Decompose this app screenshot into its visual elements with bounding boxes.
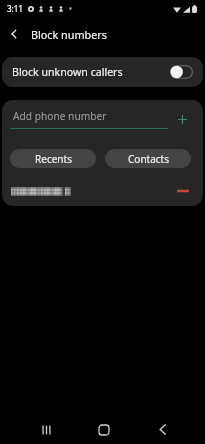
button[interactable]: Add number xyxy=(174,111,190,127)
other: Block unknown callers switch xyxy=(170,65,193,79)
button[interactable]: Recent apps xyxy=(28,415,64,444)
staticText: Block unknown callers xyxy=(12,65,123,79)
other: Remove number xyxy=(175,183,191,199)
staticText: Block numbers xyxy=(31,27,107,42)
staticText: Recents xyxy=(35,152,72,166)
button[interactable]: Home xyxy=(86,415,122,444)
button[interactable]: Remove number xyxy=(2,182,203,200)
button[interactable]: Recents xyxy=(10,149,96,168)
staticText: Add phone number xyxy=(13,109,107,123)
button[interactable]: Block unknown callers xyxy=(2,57,203,87)
button[interactable]: Back xyxy=(0,20,27,48)
staticText: 3:11 xyxy=(7,3,23,14)
staticText: Contacts xyxy=(128,152,169,166)
button[interactable]: Back xyxy=(144,415,180,444)
button[interactable]: Contacts xyxy=(105,149,191,168)
